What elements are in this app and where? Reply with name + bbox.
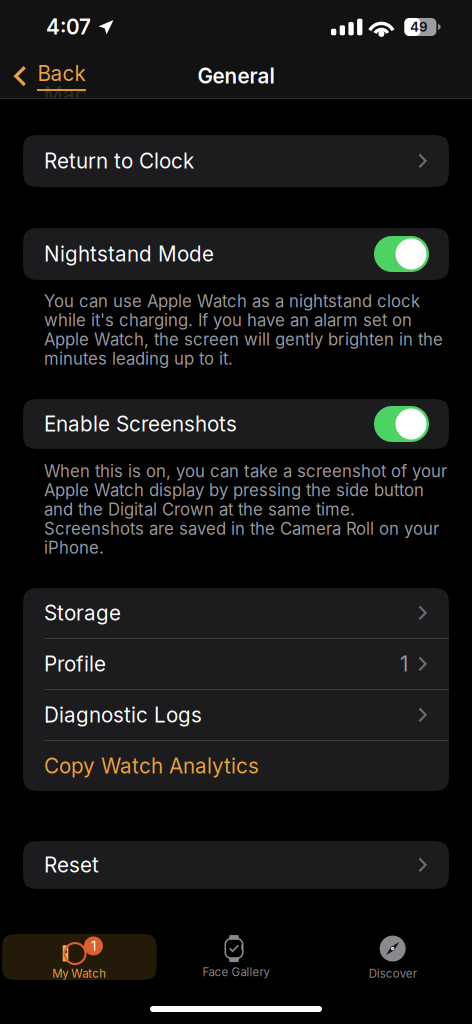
staticText: When this is on, you can take a screensh… xyxy=(44,461,447,558)
button[interactable]: Return to Clock xyxy=(23,136,449,186)
staticText: Profile xyxy=(44,651,106,676)
button[interactable]: Diagnostic Logs xyxy=(23,690,449,740)
button[interactable]: Enable Screenshots xyxy=(23,399,449,449)
staticText: 4:07 xyxy=(46,14,91,39)
staticText: Back xyxy=(37,61,85,86)
button[interactable]: Copy Watch Analytics xyxy=(23,741,449,791)
button[interactable]: Discover xyxy=(315,934,470,980)
staticText: Discover xyxy=(369,967,417,980)
button[interactable]: Face Gallery xyxy=(159,934,313,980)
staticText: 1 xyxy=(91,938,96,954)
staticText: Diagnostic Logs xyxy=(44,702,202,727)
button[interactable]: Profile xyxy=(23,639,449,689)
staticText: Storage xyxy=(44,600,121,625)
staticText: General xyxy=(197,63,274,88)
staticText: 1 xyxy=(400,651,408,676)
button[interactable]: Back xyxy=(0,54,96,98)
staticText: Copy Watch Analytics xyxy=(44,753,259,778)
button[interactable]: Nightstand Mode xyxy=(23,229,449,279)
staticText: Reset xyxy=(44,852,99,877)
button[interactable]: Reset xyxy=(23,840,449,890)
staticText: Mac. xyxy=(44,82,93,107)
staticText: 49 xyxy=(410,19,428,35)
staticText: Enable Screenshots xyxy=(44,411,237,436)
staticText: My Watch xyxy=(52,967,106,980)
staticText: Face Gallery xyxy=(202,965,269,979)
staticText: Return to Clock xyxy=(44,148,194,173)
button[interactable]: 1 xyxy=(2,934,157,980)
staticText: You can use Apple Watch as a nightstand … xyxy=(44,291,443,369)
button[interactable]: Storage xyxy=(23,588,449,638)
staticText: Nightstand Mode xyxy=(44,241,214,266)
